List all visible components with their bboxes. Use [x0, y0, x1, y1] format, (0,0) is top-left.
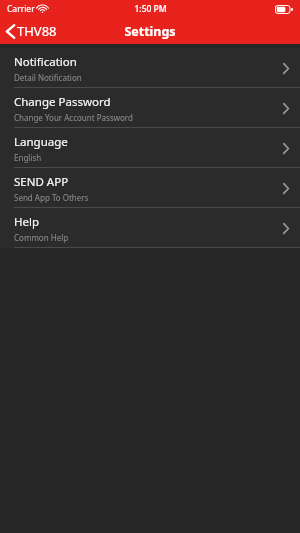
- staticText: Language: [14, 134, 68, 150]
- staticText: Detail Notification: [14, 72, 82, 83]
- staticText: Help: [14, 214, 40, 230]
- staticText: Change Your Account Password: [14, 112, 133, 123]
- staticText: Change Password: [14, 94, 111, 110]
- staticText: Settings: [124, 23, 176, 40]
- staticText: Carrier: [7, 3, 35, 15]
- staticText: Send App To Others: [14, 192, 89, 203]
- button[interactable]: Back: [0, 19, 63, 43]
- other: Back: [6, 24, 15, 39]
- staticText: Notification: [14, 54, 77, 70]
- staticText: 1:50 PM: [134, 3, 167, 15]
- staticText: THV88: [17, 22, 57, 40]
- staticText: English: [14, 152, 42, 163]
- staticText: Common Help: [14, 232, 69, 243]
- button[interactable]: SEND APP: [0, 168, 300, 208]
- button[interactable]: Help: [0, 208, 300, 248]
- button[interactable]: Language: [0, 128, 300, 168]
- staticText: SEND APP: [14, 174, 69, 190]
- button[interactable]: Notification: [0, 48, 300, 88]
- button[interactable]: Change Password: [0, 88, 300, 128]
